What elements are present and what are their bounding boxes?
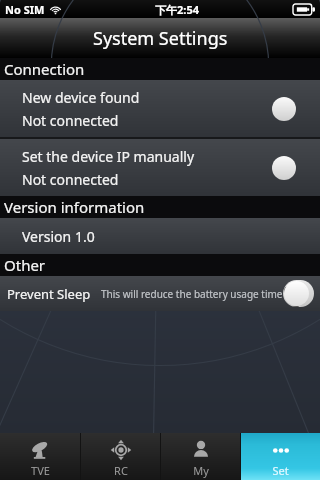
staticText: Version 1.0 bbox=[22, 227, 95, 246]
button[interactable]: Prevent Sleep bbox=[0, 276, 320, 311]
button[interactable]: Prevent Sleep off bbox=[283, 280, 314, 307]
staticText: Not connected bbox=[22, 111, 119, 130]
staticText: Other bbox=[4, 255, 46, 275]
staticText: Prevent Sleep bbox=[7, 285, 91, 303]
staticText: Connection bbox=[4, 59, 85, 79]
button[interactable]: Version 1.0 bbox=[0, 218, 320, 254]
staticText: OFF bbox=[283, 280, 303, 307]
button[interactable]: Set the device IP manually bbox=[0, 139, 320, 196]
button[interactable]: Set bbox=[241, 433, 320, 480]
button[interactable]: TVE bbox=[0, 433, 80, 480]
staticText: 下午2:54 bbox=[155, 2, 199, 17]
button[interactable]: RC bbox=[81, 433, 160, 480]
staticText: RC bbox=[114, 463, 128, 478]
staticText: No SIM bbox=[5, 2, 45, 17]
staticText: Version information bbox=[4, 197, 145, 217]
staticText: Set the device IP manually bbox=[22, 147, 195, 166]
staticText: My bbox=[193, 463, 209, 478]
staticText: New device found bbox=[22, 88, 140, 107]
button[interactable]: New device found bbox=[0, 80, 320, 137]
staticText: System Settings bbox=[93, 26, 228, 51]
button[interactable]: My bbox=[161, 433, 240, 480]
staticText: Not connected bbox=[22, 170, 119, 189]
staticText: Set bbox=[272, 463, 289, 478]
staticText: This will reduce the battery usage time bbox=[101, 287, 283, 301]
staticText: TVE bbox=[31, 463, 50, 478]
